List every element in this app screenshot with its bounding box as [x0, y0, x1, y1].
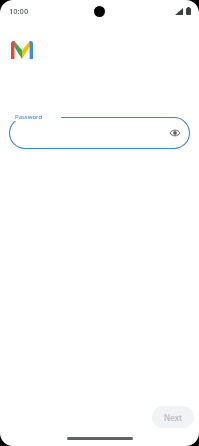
staticText: Password: [15, 113, 43, 121]
staticText: Next: [164, 412, 183, 423]
staticText: 10:00: [9, 6, 29, 16]
button[interactable]: Password: [9, 117, 190, 149]
button[interactable]: Next: [152, 406, 194, 428]
button[interactable]: Show password: [168, 126, 182, 140]
